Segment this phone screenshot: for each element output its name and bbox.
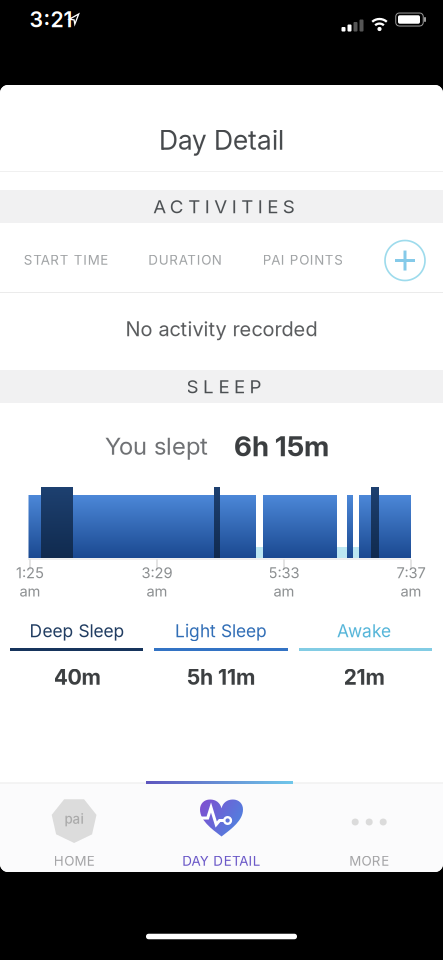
staticText: PAI POINTS: [263, 252, 343, 268]
staticText: am: [146, 582, 167, 600]
staticText: Day Detail: [159, 124, 284, 156]
staticText: pai: [65, 811, 84, 827]
staticText: SLEEP: [186, 375, 261, 397]
staticText: 21m: [343, 664, 384, 690]
button[interactable]: pai: [0, 784, 147, 872]
staticText: Awake: [337, 621, 391, 641]
staticText: HOME: [54, 853, 95, 869]
button[interactable]: MORE: [296, 784, 443, 872]
staticText: 1:25: [16, 564, 44, 581]
staticText: START TIME: [24, 252, 108, 268]
staticText: DAY DETAIL: [182, 853, 261, 869]
staticText: Deep Sleep: [29, 621, 124, 641]
staticText: am: [19, 582, 40, 600]
staticText: MORE: [349, 853, 389, 869]
staticText: 5:33: [268, 564, 299, 581]
staticText: 5h 11m: [187, 664, 255, 690]
staticText: am: [400, 582, 421, 600]
staticText: You slept: [105, 432, 208, 460]
staticText: 7:37: [396, 564, 425, 581]
staticText: 3:21: [29, 7, 72, 32]
staticText: Light Sleep: [175, 621, 267, 641]
staticText: am: [273, 582, 294, 600]
staticText: ACTIVITIES: [153, 195, 295, 217]
button[interactable]: DAY DETAIL: [148, 784, 295, 872]
staticText: 40m: [53, 664, 100, 690]
staticText: 3:29: [141, 564, 172, 581]
staticText: 6h 15m: [234, 429, 329, 462]
staticText: No activity recorded: [125, 317, 317, 341]
staticText: DURATION: [148, 252, 222, 268]
button[interactable]: Add activity: [385, 240, 425, 280]
